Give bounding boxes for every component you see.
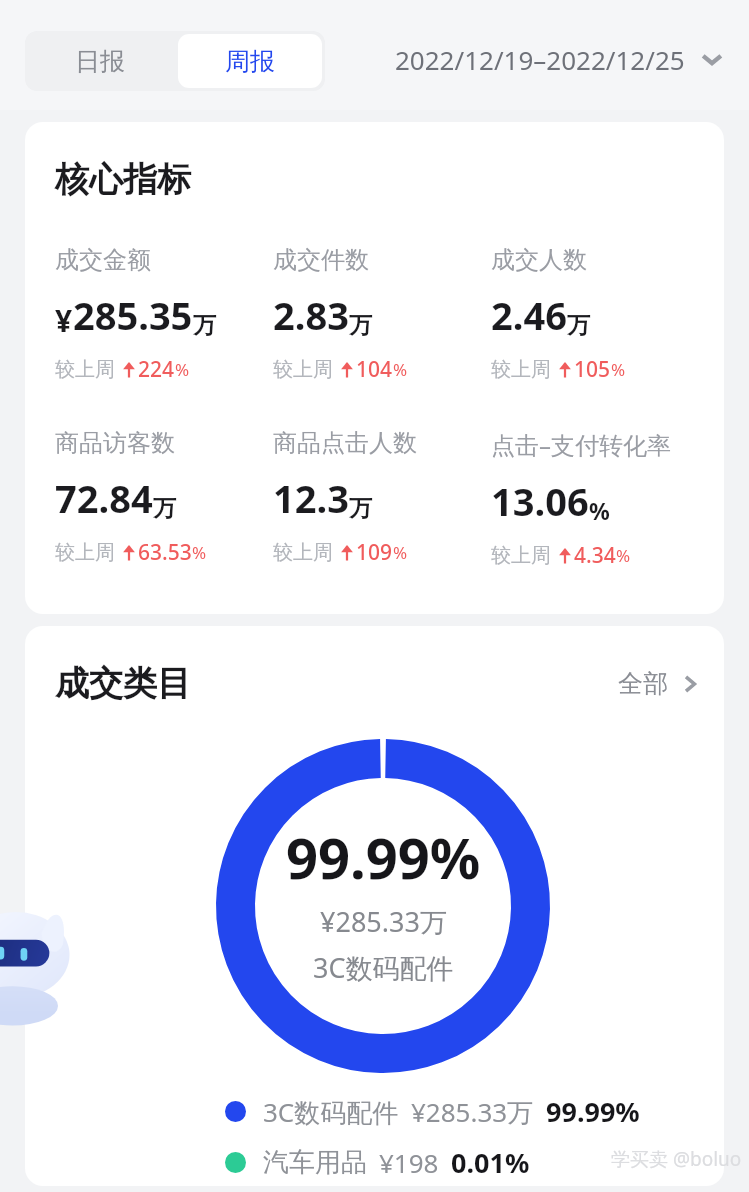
staticText: 万 <box>349 494 372 523</box>
other: View all categories <box>680 674 700 694</box>
button[interactable]: 全部 <box>618 668 700 699</box>
button[interactable]: 99.99% <box>216 739 550 1073</box>
staticText: 学买卖 @boluo <box>611 1146 742 1172</box>
staticText: 较上周 <box>55 540 115 565</box>
staticText: % <box>393 541 408 564</box>
staticText: 汽车用品 <box>263 1146 367 1179</box>
staticText: ¥285.33万 <box>320 903 447 940</box>
staticText: 较上周 <box>55 357 115 382</box>
staticText: ¥285.33万 <box>411 1094 534 1130</box>
staticText: 较上周 <box>273 540 333 565</box>
staticText: 105 <box>574 355 611 384</box>
staticText: % <box>589 495 610 526</box>
staticText: 成交金额 <box>55 245 151 275</box>
staticText: 日报 <box>75 46 125 77</box>
staticText: 104 <box>356 355 393 384</box>
staticText: 商品点击人数 <box>273 428 417 458</box>
staticText: 2.46 <box>491 289 567 341</box>
button[interactable]: 3C数码配件 <box>225 1093 640 1130</box>
staticText: % <box>611 358 626 381</box>
staticText: 万 <box>349 311 372 340</box>
other: Change date range <box>699 46 725 72</box>
staticText: 2.83 <box>273 289 349 341</box>
button[interactable]: 周报 <box>178 34 322 88</box>
staticText: 285.35 <box>73 289 193 341</box>
staticText: ¥198 <box>379 1145 439 1180</box>
staticText: % <box>616 544 631 567</box>
staticText: 12.3 <box>273 472 349 524</box>
button[interactable]: 2022/12/19–2022/12/25 <box>395 28 725 90</box>
staticText: 万 <box>193 311 216 340</box>
staticText: 4.34 <box>574 541 616 570</box>
staticText: % <box>393 358 408 381</box>
staticText: 周报 <box>225 46 275 77</box>
button[interactable]: 商品访客数 <box>55 428 273 567</box>
staticText: 成交件数 <box>273 245 369 275</box>
staticText: 13.06 <box>491 475 589 527</box>
button[interactable]: 日报 <box>25 31 175 91</box>
staticText: 核心指标 <box>55 158 191 201</box>
staticText: 2022/12/19–2022/12/25 <box>395 42 685 77</box>
staticText: 成交人数 <box>491 245 587 275</box>
staticText: 72.84 <box>55 472 153 524</box>
staticText: 224 <box>138 355 175 384</box>
staticText: 成交类目 <box>55 662 191 705</box>
button[interactable]: Assistant <box>0 898 82 1014</box>
staticText: 万 <box>567 311 590 340</box>
button[interactable]: 成交人数 <box>491 245 702 384</box>
button[interactable]: 汽车用品 <box>225 1144 530 1181</box>
staticText: 3C数码配件 <box>263 1094 399 1130</box>
staticText: % <box>175 358 190 381</box>
staticText: 3C数码配件 <box>313 949 454 986</box>
staticText: 109 <box>356 538 393 567</box>
staticText: 63.53 <box>138 538 192 567</box>
staticText: 较上周 <box>273 357 333 382</box>
staticText: 99.99% <box>546 1093 640 1130</box>
staticText: 全部 <box>618 668 668 699</box>
staticText: 点击–支付转化率 <box>491 428 671 461</box>
button[interactable]: 成交金额 <box>55 245 273 384</box>
staticText: 商品访客数 <box>55 428 175 458</box>
button[interactable]: 成交件数 <box>273 245 491 384</box>
staticText: 较上周 <box>491 357 551 382</box>
staticText: % <box>192 541 207 564</box>
staticText: 0.01% <box>451 1144 530 1181</box>
staticText: 99.99% <box>286 819 481 895</box>
staticText: 较上周 <box>491 543 551 568</box>
button[interactable]: 商品点击人数 <box>273 428 491 567</box>
button[interactable]: 点击–支付转化率 <box>491 428 702 570</box>
staticText: 万 <box>153 494 176 523</box>
staticText: ¥ <box>55 300 73 341</box>
